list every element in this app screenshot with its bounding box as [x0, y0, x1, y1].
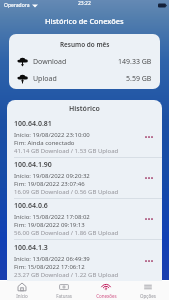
staticText: 16.09 GB Download / 0.56 GB Upload	[14, 188, 119, 196]
staticText: 41.14 GB Download / 1.53 GB Upload	[14, 147, 119, 155]
staticText: Fim: 19/08/2022 23:07:46	[14, 180, 85, 188]
staticText: 149.33 GB	[118, 57, 152, 67]
button[interactable]: Conexões	[85, 281, 127, 300]
staticText: 5.59 GB	[126, 74, 152, 84]
staticText: 56.00 GB Download / 1.86 GB Upload	[14, 229, 119, 237]
staticText: 100.64.0.81	[14, 119, 52, 129]
button[interactable]: 100.64.0.81	[7, 117, 162, 158]
staticText: Operadora	[4, 2, 30, 9]
staticText: Início: 19/08/2022 23:10:00	[14, 131, 90, 139]
button[interactable]: Faturas	[43, 281, 85, 300]
button[interactable]: Mais opções	[140, 251, 158, 271]
button[interactable]: 100.64.1.90	[7, 158, 162, 199]
button[interactable]: 100.64.0.6	[7, 199, 162, 240]
staticText: 23:22	[78, 0, 91, 7]
staticText: 100.64.1.90	[14, 160, 52, 170]
staticText: Início	[16, 293, 28, 299]
staticText: Fim: 19/08/2022 09:19:13	[14, 221, 85, 229]
staticText: Início: 13/08/2022 06:49:39	[14, 255, 90, 263]
staticText: 100.64.1.3	[14, 243, 48, 253]
button[interactable]: Mais opções	[140, 209, 158, 229]
staticText: Faturas	[56, 293, 72, 299]
staticText: Histórico	[69, 104, 100, 114]
button[interactable]: Mais opções	[140, 168, 158, 188]
button[interactable]: Mais opções	[140, 127, 158, 147]
staticText: 23.27 GB Download / 1.22 GB Upload	[14, 271, 119, 279]
staticText: Início: 19/08/2022 09:20:32	[14, 172, 90, 180]
staticText: Histórico de Conexões	[45, 16, 124, 26]
button[interactable]: Início	[0, 281, 43, 300]
staticText: 100.64.0.6	[14, 201, 48, 211]
staticText: Fim: 15/08/2022 17:06:12	[14, 263, 85, 271]
button[interactable]: Opções	[127, 281, 169, 300]
staticText: Resumo do mês	[60, 40, 110, 49]
button[interactable]: 100.64.1.3	[7, 240, 162, 281]
staticText: Download	[33, 57, 67, 67]
staticText: Fim: Ainda conectado	[14, 139, 75, 147]
staticText: Conexões	[96, 293, 117, 299]
staticText: Início: 15/08/2022 17:08:02	[14, 213, 90, 221]
staticText: Opções	[140, 293, 156, 299]
staticText: Upload	[33, 74, 57, 84]
